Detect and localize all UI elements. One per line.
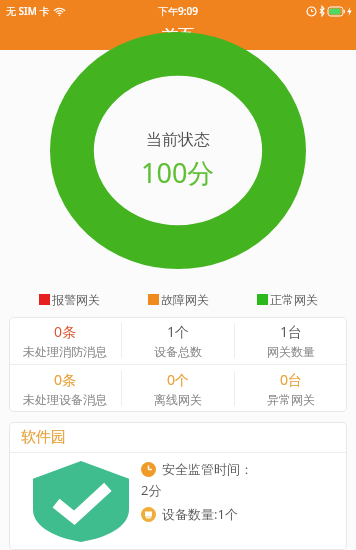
staticText: 设备总数 — [154, 344, 202, 359]
staticText: 0个 — [167, 370, 190, 389]
other: 监管时间 — [141, 462, 156, 477]
staticText: 当前状态 — [146, 130, 210, 150]
button[interactable]: 报警网关 — [14, 292, 124, 307]
button[interactable]: 故障网关 — [124, 292, 233, 307]
button[interactable]: 正常网关 — [233, 292, 342, 307]
staticText: 软件园 — [21, 428, 66, 447]
staticText: 网关数量 — [267, 344, 315, 359]
staticText: 未处理消防消息 — [23, 344, 107, 359]
button[interactable]: 0条 — [9, 365, 121, 412]
button[interactable]: 软件园 — [9, 422, 347, 550]
staticText: 0条 — [54, 322, 77, 341]
staticText: 离线网关 — [154, 392, 202, 407]
staticText: 1台 — [280, 322, 303, 341]
other: 设备数量 — [141, 507, 156, 522]
staticText: 下午9:09 — [158, 4, 198, 18]
staticText: 故障网关 — [161, 292, 209, 307]
staticText: 100分 — [141, 154, 215, 191]
staticText: 异常网关 — [267, 392, 315, 407]
staticText: 2分 — [141, 481, 162, 499]
staticText: 0台 — [280, 370, 303, 389]
button[interactable]: 0个 — [122, 365, 234, 412]
staticText: 设备数量:1个 — [162, 505, 238, 523]
button[interactable]: 1台 — [235, 317, 347, 364]
staticText: 0条 — [54, 370, 77, 389]
staticText: 报警网关 — [52, 292, 100, 307]
button[interactable]: 0条 — [9, 317, 121, 364]
button[interactable]: 1个 — [122, 317, 234, 364]
staticText: 无 SIM 卡 — [6, 4, 50, 18]
button[interactable]: 0台 — [235, 365, 347, 412]
staticText: 首页 — [162, 26, 194, 46]
staticText: 正常网关 — [270, 292, 318, 307]
staticText: 1个 — [167, 322, 190, 341]
staticText: 未处理设备消息 — [23, 392, 107, 407]
staticText: 安全监管时间： — [162, 461, 253, 477]
